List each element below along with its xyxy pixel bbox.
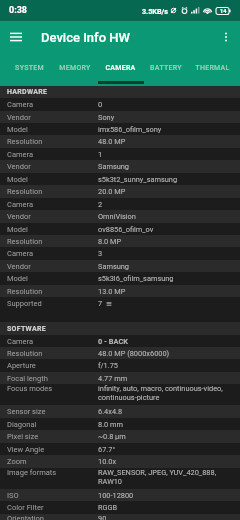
staticText: Sensor size [7, 407, 98, 416]
staticText: Device Info HW [41, 30, 131, 45]
staticText: 1 [98, 150, 103, 159]
staticText: 48.0 MP [98, 137, 126, 146]
staticText: Model [7, 225, 98, 234]
staticText: MEMORY [59, 64, 91, 72]
staticText: Sony [98, 113, 115, 122]
button[interactable]: Orientation [0, 514, 240, 520]
button[interactable]: Camera [0, 148, 240, 160]
button[interactable]: Menu [0, 21, 32, 53]
staticText: 20.0 MP [98, 187, 126, 196]
button[interactable]: Model [0, 173, 240, 185]
staticText: Aperture [7, 361, 98, 370]
staticText: SYSTEM [15, 64, 44, 72]
staticText: imx586_ofilm_sony [98, 125, 162, 134]
button[interactable]: Color Filter [0, 501, 240, 514]
staticText: Resolution [7, 137, 98, 146]
button[interactable]: Resolution [0, 135, 240, 148]
staticText: Camera [7, 249, 98, 258]
staticText: SOFTWARE [7, 325, 46, 333]
staticText: 0 - BACK [98, 337, 128, 346]
staticText: Diagonal [7, 420, 98, 429]
button[interactable]: Vendor [0, 260, 240, 272]
button[interactable]: CAMERA [97, 53, 143, 83]
button[interactable]: Model [0, 272, 240, 285]
staticText: THERMAL [195, 64, 230, 72]
button[interactable]: Camera [0, 247, 240, 260]
staticText: 48.0 MP (8000x6000) [98, 349, 170, 358]
button[interactable]: Resolution [0, 185, 240, 198]
staticText: Camera [7, 337, 98, 346]
staticText: BATTERY [150, 64, 182, 72]
button[interactable]: Focus modes [0, 384, 240, 405]
staticText: Supported [7, 299, 98, 308]
staticText: Vendor [7, 113, 98, 122]
staticText: Camera [7, 200, 98, 209]
staticText: Focus modes [7, 384, 98, 393]
staticText: 14 [220, 8, 227, 14]
staticText: Camera [7, 100, 98, 109]
staticText: 100-12800 [98, 491, 134, 500]
staticText: Color Filter [7, 503, 98, 512]
staticText: infinity, auto, macro, continuous-video, [98, 384, 223, 393]
staticText: Image formats [7, 468, 98, 477]
button[interactable]: Vendor [0, 111, 240, 123]
staticText: 10.0x [98, 457, 117, 466]
button[interactable]: Model [0, 123, 240, 135]
button[interactable]: Diagonal [0, 418, 240, 430]
button[interactable]: Camera [0, 198, 240, 210]
staticText: Vendor [7, 262, 98, 271]
button[interactable]: Focal length [0, 372, 240, 384]
staticText: RAW_SENSOR, JPEG, YUV_420_888, [98, 468, 217, 477]
staticText: s5k3t2_sunny_samsung [98, 175, 178, 184]
staticText: RAW10 [98, 477, 122, 486]
staticText: 8.0 mm [98, 420, 124, 429]
staticText: Model [7, 125, 98, 134]
button[interactable]: Resolution [0, 285, 240, 297]
button[interactable]: Camera [0, 335, 240, 347]
button[interactable]: THERMAL [189, 53, 235, 83]
staticText: 7 ≡ [98, 299, 113, 308]
staticText: Zoom [7, 457, 98, 466]
button[interactable]: ISO [0, 489, 240, 501]
button[interactable]: Zoom [0, 455, 240, 468]
button[interactable]: More options [212, 23, 240, 51]
staticText: continuous-picture [98, 393, 160, 402]
staticText: 8.0 MP [98, 237, 122, 246]
staticText: View Angle [7, 445, 98, 454]
button[interactable]: Resolution [0, 347, 240, 359]
staticText: Camera [7, 150, 98, 159]
staticText: Resolution [7, 287, 98, 296]
button[interactable]: Supported [0, 297, 240, 310]
staticText: Model [7, 274, 98, 283]
staticText: ISO [7, 491, 98, 500]
staticText: 90 [98, 514, 107, 520]
staticText: 3 [98, 249, 103, 258]
staticText: Samsung [98, 262, 130, 271]
button[interactable]: Pixel size [0, 430, 240, 443]
button[interactable]: Sensor size [0, 405, 240, 418]
button[interactable]: Camera [0, 98, 240, 111]
button[interactable]: View Angle [0, 443, 240, 455]
staticText: HARDWARE [7, 88, 48, 96]
button[interactable]: Image formats [0, 468, 240, 489]
staticText: 3.5KB/s [142, 7, 168, 15]
button[interactable]: Aperture [0, 359, 240, 372]
staticText: 13.0 MP [98, 287, 126, 296]
staticText: Resolution [7, 187, 98, 196]
button[interactable]: Vendor [0, 160, 240, 173]
staticText: Vendor [7, 212, 98, 221]
staticText: Orientation [7, 514, 98, 520]
button[interactable]: BATTERY [143, 53, 189, 83]
button[interactable]: Vendor [0, 210, 240, 223]
button[interactable]: MEMORY [52, 53, 97, 83]
staticText: Focal length [7, 374, 98, 383]
staticText: Resolution [7, 349, 98, 358]
button[interactable]: Resolution [0, 235, 240, 247]
button[interactable]: SYSTEM [7, 53, 52, 83]
staticText: f/1.75 [98, 361, 119, 370]
button[interactable]: Model [0, 223, 240, 235]
staticText: 2 [98, 200, 103, 209]
staticText: OmniVision [98, 212, 136, 221]
staticText: s5k3l6_ofilm_samsung [98, 274, 174, 283]
staticText: Samsung [98, 162, 130, 171]
